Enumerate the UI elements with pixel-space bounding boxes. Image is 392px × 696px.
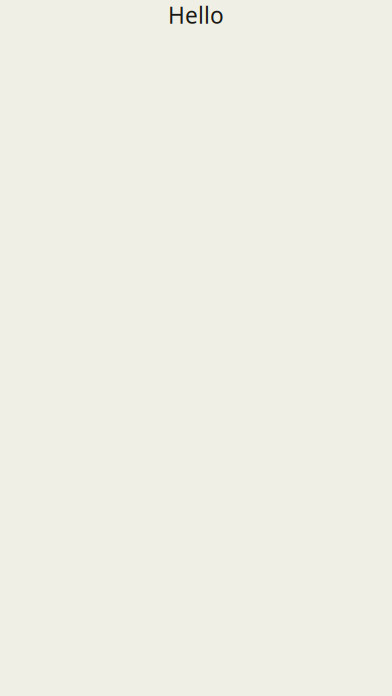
staticText: Hello [168,0,224,30]
